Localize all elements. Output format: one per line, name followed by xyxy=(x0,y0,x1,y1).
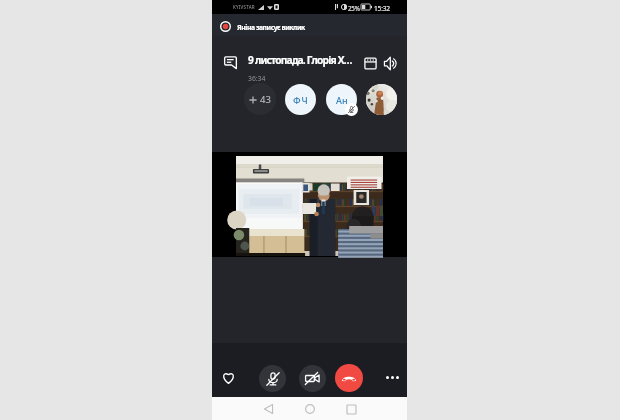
button[interactable]: ФЧ xyxy=(285,84,316,115)
button[interactable]: More options xyxy=(380,365,404,389)
button[interactable]: Unmute microphone xyxy=(259,365,286,392)
button[interactable]: Back xyxy=(258,399,278,419)
staticText: 43 xyxy=(260,93,271,106)
staticText: Ан xyxy=(336,94,348,106)
button[interactable]: React xyxy=(216,365,240,389)
button[interactable]: Chat xyxy=(220,52,240,72)
staticText: 9 листопада. Глорія Х… xyxy=(248,53,360,67)
staticText: 36:34 xyxy=(248,74,266,83)
button[interactable]: 43 xyxy=(244,83,276,115)
staticText: 15:32 xyxy=(374,4,390,13)
staticText: Яніна записує виклик xyxy=(237,23,305,32)
button[interactable] xyxy=(366,84,397,115)
staticText: KYIVSTAR xyxy=(233,4,255,10)
button[interactable]: Hang up xyxy=(335,364,363,392)
staticText: 25% xyxy=(348,4,360,12)
button[interactable]: Turn camera on xyxy=(299,365,326,392)
button[interactable]: Home xyxy=(300,399,320,419)
button[interactable]: Speaker xyxy=(382,54,401,73)
staticText: ФЧ xyxy=(293,94,309,106)
button[interactable]: Recent apps xyxy=(341,399,361,419)
button[interactable]: Ан xyxy=(326,84,357,115)
button[interactable]: Change layout xyxy=(361,54,379,72)
